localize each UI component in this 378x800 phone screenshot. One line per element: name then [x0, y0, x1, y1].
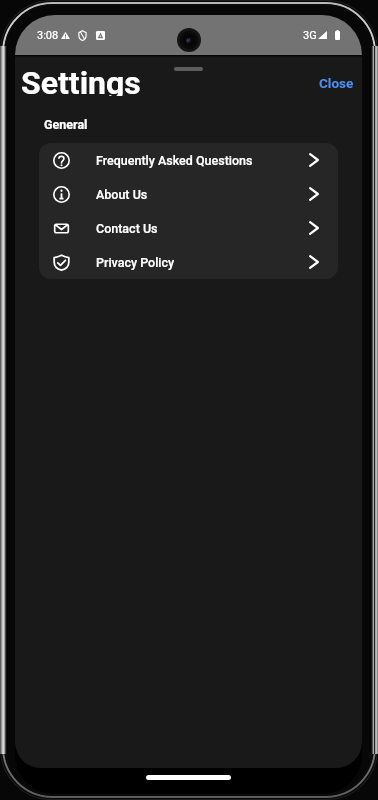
button[interactable]: Frequently Asked Questions [39, 143, 338, 177]
button[interactable]: Privacy Policy [39, 245, 338, 279]
staticText: About Us [96, 187, 148, 202]
staticText: Close [319, 75, 354, 91]
staticText: 3:08 [37, 29, 59, 42]
staticText: Settings [21, 64, 141, 96]
button[interactable]: About Us [39, 177, 338, 211]
staticText: Privacy Policy [96, 255, 175, 270]
staticText: Frequently Asked Questions [96, 153, 253, 168]
staticText: Contact Us [96, 221, 158, 236]
staticText: 3G [303, 29, 317, 42]
button[interactable]: Contact Us [39, 211, 338, 245]
button[interactable]: Close [313, 70, 360, 96]
staticText: General [44, 117, 88, 132]
